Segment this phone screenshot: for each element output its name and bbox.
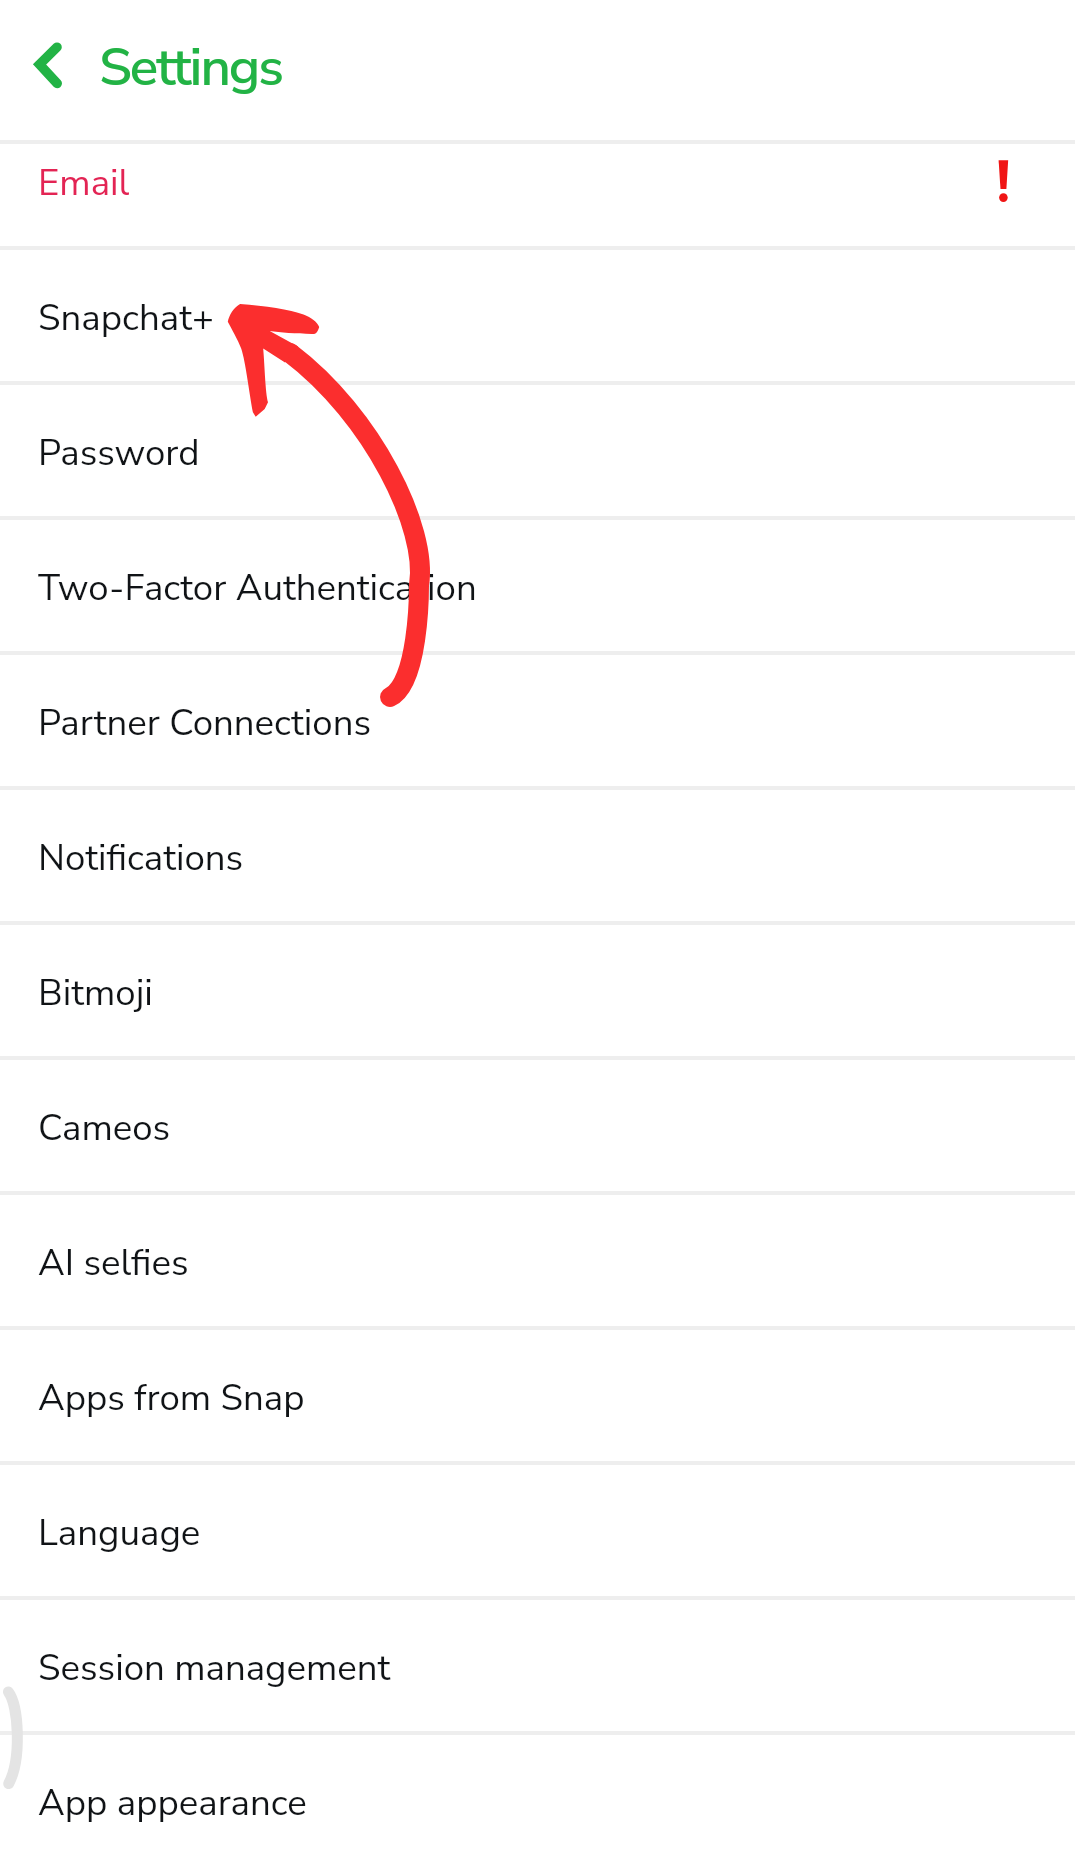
button[interactable]: Password — [0, 384, 1075, 515]
button[interactable]: Notifications — [0, 789, 1075, 920]
button[interactable]: Two-Factor Authentication — [0, 519, 1075, 650]
button[interactable]: Apps from Snap — [0, 1329, 1075, 1460]
staticText: Session management — [38, 1647, 391, 1691]
button[interactable]: Bitmoji — [0, 924, 1075, 1055]
staticText: Language — [38, 1512, 201, 1556]
other: Email needs attention — [994, 156, 1016, 206]
staticText: Notifications — [38, 837, 244, 881]
staticText: Settings — [99, 31, 282, 103]
staticText: Cameos — [38, 1107, 171, 1151]
button[interactable]: Snapchat+ — [0, 249, 1075, 380]
button[interactable]: App appearance — [0, 1734, 1075, 1854]
staticText: Email — [38, 162, 130, 206]
staticText: AI selfies — [38, 1242, 189, 1286]
button[interactable]: Session management — [0, 1599, 1075, 1730]
button[interactable]: Email — [0, 143, 1075, 245]
staticText: Apps from Snap — [38, 1377, 305, 1421]
staticText: App appearance — [38, 1782, 307, 1826]
staticText: Bitmoji — [38, 972, 153, 1016]
button[interactable]: Partner Connections — [0, 654, 1075, 785]
button[interactable]: AI selfies — [0, 1194, 1075, 1325]
button[interactable]: Language — [0, 1464, 1075, 1595]
button[interactable]: Back — [11, 20, 91, 112]
button[interactable]: Cameos — [0, 1059, 1075, 1190]
staticText: Snapchat+ — [38, 297, 214, 341]
staticText: Two-Factor Authentication — [38, 567, 477, 611]
staticText: Partner Connections — [38, 702, 372, 746]
staticText: Password — [38, 432, 200, 476]
